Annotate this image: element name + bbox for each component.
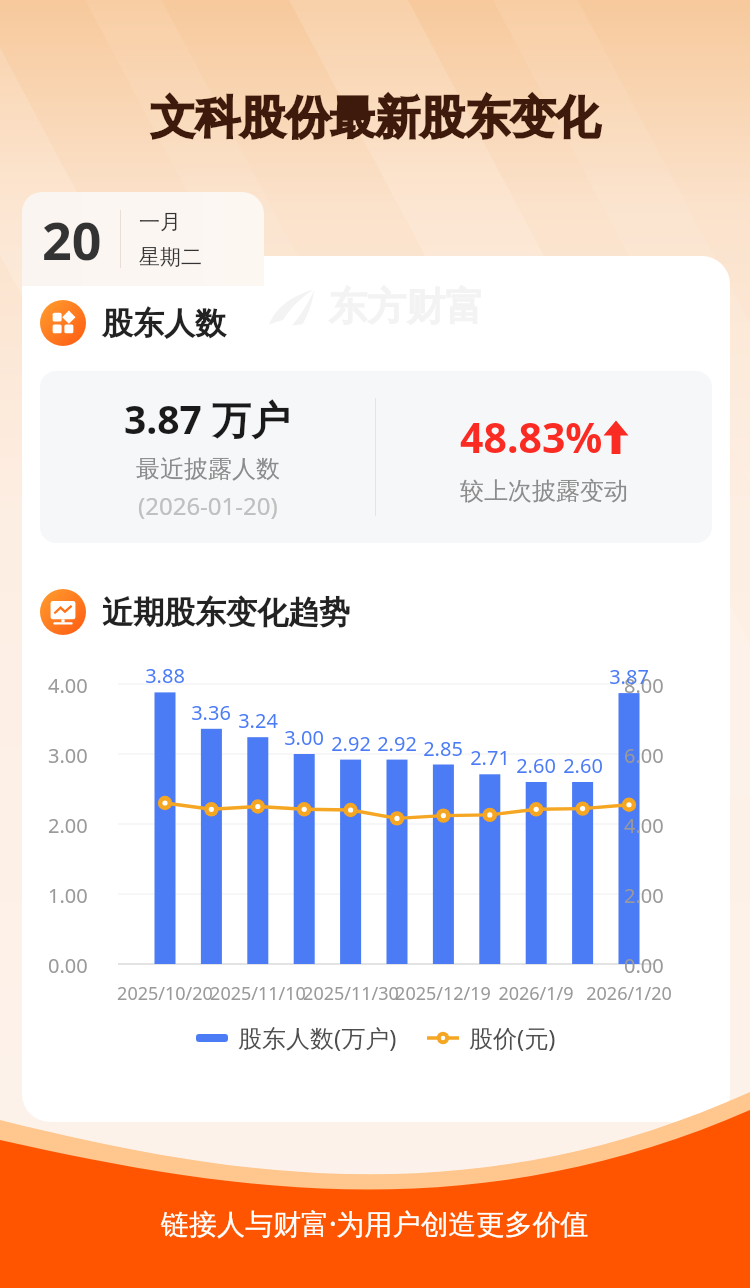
staticText: 2.92 xyxy=(331,730,371,757)
staticText: 6.00 xyxy=(624,742,664,769)
staticText: 3.00 xyxy=(284,724,324,751)
staticText: 4.00 xyxy=(624,812,664,839)
staticText: 近期股东变化趋势 xyxy=(102,593,350,632)
staticText: 2026/1/9 xyxy=(498,981,574,1006)
button[interactable]: 近期股东变化趋势 xyxy=(40,589,730,635)
button[interactable]: 股东人数 xyxy=(40,300,730,346)
staticText: 2.00 xyxy=(624,882,664,909)
staticText: (2026-01-20) xyxy=(138,489,278,522)
staticText: 2025/12/19 xyxy=(395,981,491,1006)
staticText: 3.36 xyxy=(191,699,231,726)
staticText: 2.71 xyxy=(470,744,510,771)
staticText: 0.00 xyxy=(48,952,88,979)
staticText: 2025/10/20 xyxy=(117,981,213,1006)
staticText: 东方财富 xyxy=(328,282,484,331)
other: 近期股东变化趋势 xyxy=(40,589,86,635)
staticText: 星期二 xyxy=(139,244,202,270)
staticText: 8.00 xyxy=(624,672,664,699)
staticText: 3.88 xyxy=(145,662,185,689)
staticText: 2.92 xyxy=(377,730,417,757)
staticText: 2025/11/30 xyxy=(303,981,399,1006)
staticText: 2026/1/20 xyxy=(586,981,672,1006)
staticText: 2.60 xyxy=(516,752,556,779)
staticText: 股东人数 xyxy=(102,304,226,343)
staticText: 1.00 xyxy=(48,882,88,909)
staticText: 20 xyxy=(42,204,102,275)
staticText: 2.00 xyxy=(48,812,88,839)
staticText: 链接人与财富·为用户创造更多价值 xyxy=(161,1204,589,1242)
staticText: 3.24 xyxy=(238,707,278,734)
staticText: 3.00 xyxy=(48,742,88,769)
staticText: 3.87 万户 xyxy=(124,392,291,445)
staticText: 最近披露人数 xyxy=(136,454,280,484)
staticText: 2.85 xyxy=(423,735,463,762)
staticText: 48.83% xyxy=(460,409,603,465)
staticText: 文科股份最新股东变化 xyxy=(150,90,600,147)
staticText: 0.00 xyxy=(624,952,664,979)
staticText: 4.00 xyxy=(48,672,88,699)
staticText: 较上次披露变动 xyxy=(460,476,628,506)
staticText: 一月 xyxy=(139,209,181,235)
staticText: 股东人数(万户) xyxy=(238,1021,397,1054)
staticText: 2025/11/10 xyxy=(210,981,306,1006)
other: 股东人数 xyxy=(40,300,86,346)
button[interactable]: 3.87 万户 xyxy=(40,371,712,543)
staticText: 股价(元) xyxy=(469,1021,556,1054)
staticText: 3.87 xyxy=(609,663,649,690)
button[interactable]: 20 xyxy=(22,192,264,286)
staticText: 2.60 xyxy=(563,752,603,779)
